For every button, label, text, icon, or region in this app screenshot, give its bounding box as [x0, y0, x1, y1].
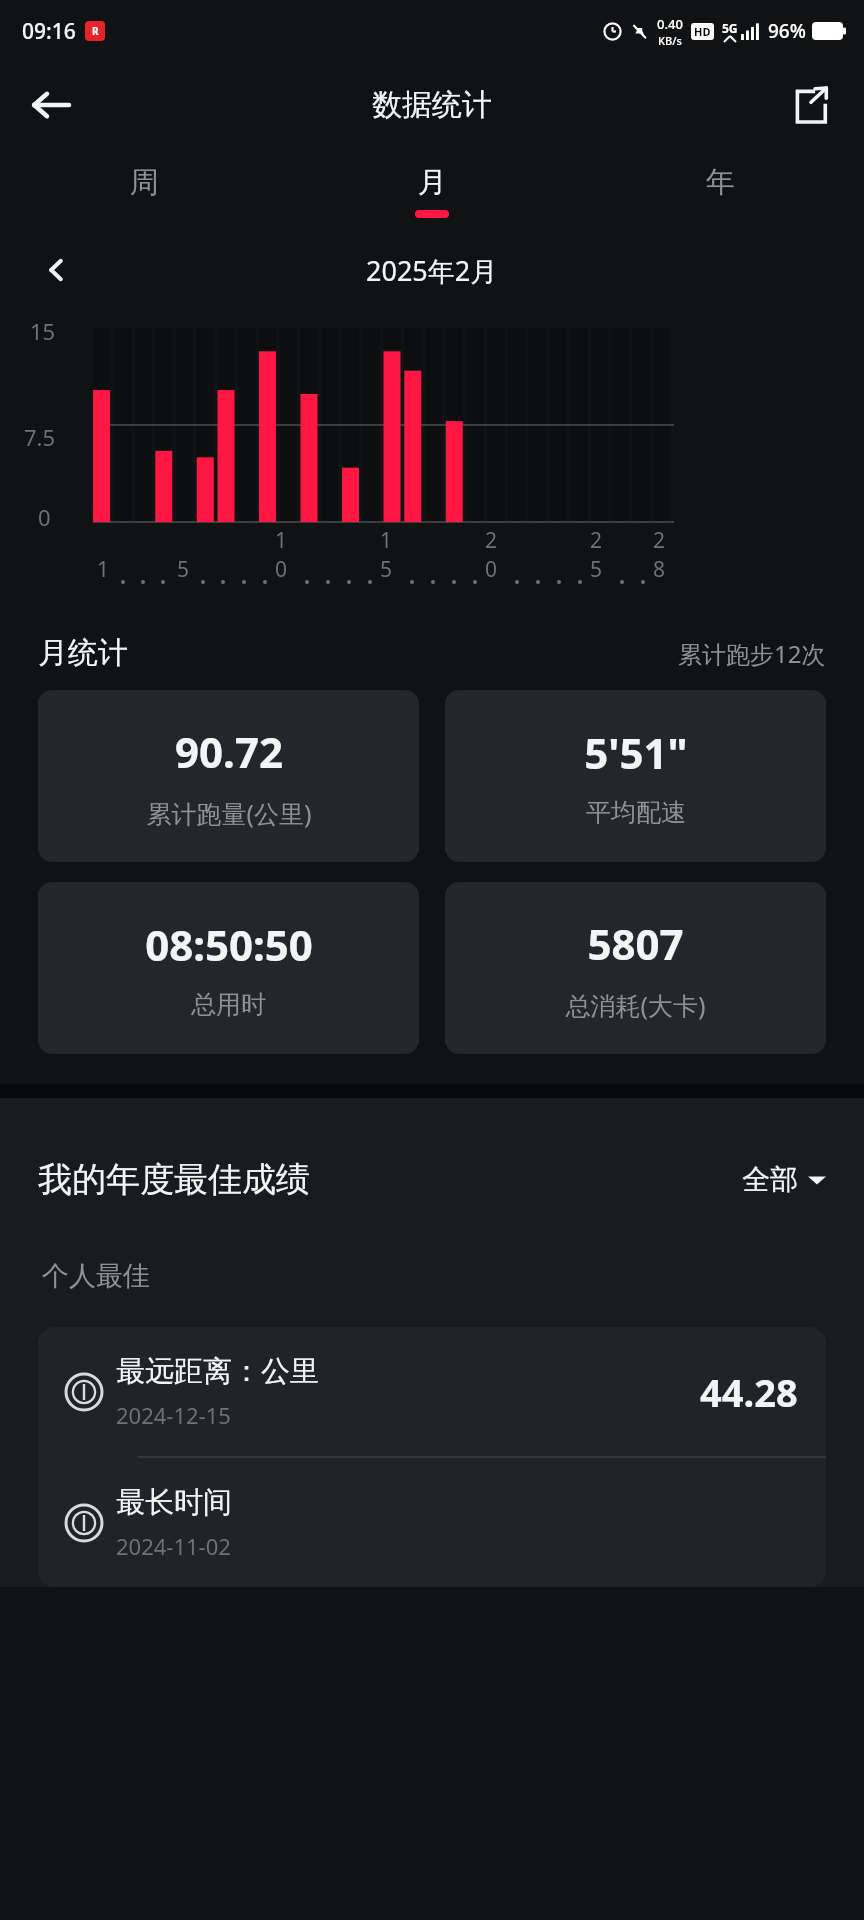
- button[interactable]: 全部: [742, 1162, 826, 1197]
- button[interactable]: 08:50:50: [38, 882, 419, 1054]
- button[interactable]: Back: [20, 74, 82, 136]
- staticText: 我的年度最佳成绩: [38, 1158, 310, 1201]
- staticText: 2024-11-02: [116, 1531, 231, 1561]
- staticText: 20: [485, 526, 506, 584]
- staticText: 08:50:50: [145, 916, 313, 973]
- staticText: HD: [694, 24, 711, 39]
- staticText: 月: [418, 164, 447, 201]
- staticText: 1: [97, 555, 110, 584]
- staticText: R: [92, 24, 99, 38]
- staticText: 平均配速: [586, 797, 686, 828]
- staticText: 5807: [587, 915, 684, 972]
- button[interactable]: 月: [288, 148, 576, 234]
- button[interactable]: Previous month: [30, 244, 82, 296]
- staticText: 44.28: [700, 1366, 798, 1418]
- button[interactable]: 最长时间: [38, 1458, 826, 1587]
- staticText: 总用时: [191, 989, 266, 1020]
- staticText: 15: [380, 526, 401, 584]
- staticText: 96%: [768, 18, 806, 44]
- staticText: KB/s: [658, 33, 682, 48]
- button[interactable]: 周: [0, 148, 288, 234]
- staticText: 15: [30, 316, 56, 346]
- button[interactable]: 5807: [445, 882, 826, 1054]
- staticText: 数据统计: [372, 86, 492, 124]
- staticText: 5G: [722, 20, 738, 36]
- staticText: 全部: [742, 1162, 798, 1197]
- staticText: 年: [706, 164, 735, 201]
- staticText: 09:16: [22, 17, 76, 46]
- staticText: 累计跑量(公里): [146, 796, 312, 830]
- button[interactable]: Share: [782, 76, 840, 134]
- staticText: 90.72: [175, 723, 283, 780]
- staticText: 7.5: [24, 422, 56, 452]
- button[interactable]: 5'51": [445, 690, 826, 862]
- staticText: 月统计: [38, 634, 128, 672]
- button[interactable]: 最远距离：公里: [38, 1327, 826, 1456]
- button[interactable]: 年: [576, 148, 864, 234]
- staticText: 周: [130, 164, 159, 201]
- staticText: 2024-12-15: [116, 1400, 231, 1430]
- staticText: 最远距离：公里: [116, 1353, 319, 1390]
- staticText: 28: [653, 526, 674, 584]
- button[interactable]: 90.72: [38, 690, 419, 862]
- staticText: 2025年2月: [366, 252, 498, 289]
- staticText: 0: [38, 502, 51, 532]
- staticText: 0.40: [657, 15, 683, 33]
- staticText: 10: [275, 526, 296, 584]
- staticText: 5'51": [584, 724, 688, 781]
- staticText: 最长时间: [116, 1484, 232, 1521]
- staticText: 个人最佳: [42, 1259, 150, 1293]
- staticText: 5: [177, 555, 190, 584]
- staticText: 累计跑步12次: [678, 637, 826, 670]
- staticText: 25: [590, 526, 611, 584]
- staticText: 总消耗(大卡): [565, 988, 706, 1022]
